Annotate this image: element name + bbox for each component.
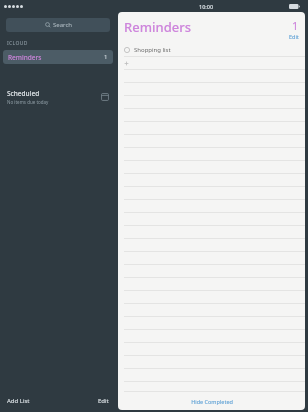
staticText: Edit: [289, 33, 299, 40]
button[interactable]: Edit: [98, 397, 109, 405]
staticText: Add List: [7, 397, 30, 405]
button[interactable]: Shopping list: [118, 44, 305, 56]
staticText: Search: [53, 21, 72, 29]
staticText: 1: [104, 53, 108, 61]
staticText: No items due today: [7, 99, 49, 105]
staticText: Reminders: [124, 18, 191, 36]
button[interactable]: Scheduled: [0, 88, 116, 106]
staticText: Shopping list: [134, 46, 171, 54]
staticText: ICLOUD: [7, 40, 28, 47]
button[interactable]: Add List: [7, 397, 30, 405]
button[interactable]: Search: [6, 18, 110, 32]
staticText: Reminders: [8, 53, 42, 62]
staticText: Hide Completed: [191, 398, 233, 405]
staticText: 1: [292, 18, 299, 33]
button[interactable]: Edit: [289, 33, 299, 40]
staticText: 10:00: [199, 3, 214, 10]
staticText: Edit: [98, 397, 109, 405]
staticText: Scheduled: [7, 89, 40, 98]
other: Scheduled calendar: [101, 93, 109, 101]
button[interactable]: Reminders: [3, 50, 113, 64]
button[interactable]: Hide Completed: [118, 392, 305, 410]
